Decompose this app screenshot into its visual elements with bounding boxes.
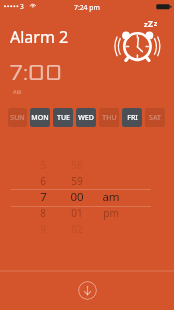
button[interactable]: TUE	[53, 108, 73, 127]
button[interactable]: 01	[60, 205, 94, 221]
staticText: AM	[13, 88, 22, 95]
button[interactable]: am	[94, 189, 128, 205]
staticText: z	[144, 19, 148, 29]
staticText: MON	[31, 113, 49, 123]
staticText: SUN	[10, 113, 25, 123]
button[interactable]: THU	[99, 108, 119, 127]
button[interactable]: 7	[26, 189, 60, 205]
button[interactable]: SUN	[8, 108, 27, 127]
staticText: 7:00	[10, 60, 63, 86]
staticText: TUE	[57, 113, 70, 123]
staticText: Z	[148, 18, 153, 30]
staticText: 00	[70, 189, 84, 205]
staticText: SAT	[149, 113, 161, 123]
button[interactable]: Collapse	[78, 281, 97, 300]
staticText: pm	[103, 206, 119, 220]
button[interactable]: 6	[26, 173, 60, 189]
staticText: 7:24 pm	[74, 3, 100, 12]
staticText: 59	[71, 174, 83, 188]
staticText: 02	[71, 222, 83, 236]
button[interactable]: FRI	[122, 108, 142, 127]
staticText: 6	[40, 174, 46, 188]
button[interactable]: 58	[60, 157, 94, 173]
button[interactable]: 59	[60, 173, 94, 189]
staticText: 5	[40, 158, 46, 172]
staticText: WED	[78, 113, 94, 123]
staticText: am	[102, 189, 120, 205]
staticText: Alarm 2	[10, 26, 69, 48]
staticText: 3	[20, 2, 24, 11]
button[interactable]: 02	[60, 221, 94, 237]
button[interactable]: MON	[30, 108, 50, 127]
staticText: 01	[71, 206, 83, 220]
staticText: 8	[40, 206, 46, 220]
staticText: 9	[40, 222, 46, 236]
button[interactable]: WED	[76, 108, 96, 127]
staticText: THU	[102, 113, 117, 123]
button[interactable]: Alarm	[113, 19, 169, 65]
staticText: 58	[71, 158, 83, 172]
staticText: FRI	[127, 113, 138, 123]
staticText: 7	[40, 189, 47, 205]
button[interactable]: 00	[60, 189, 94, 205]
button[interactable]: 8	[26, 205, 60, 221]
button[interactable]: SAT	[145, 108, 165, 127]
button[interactable]: pm	[94, 205, 128, 221]
staticText: z	[154, 19, 158, 28]
